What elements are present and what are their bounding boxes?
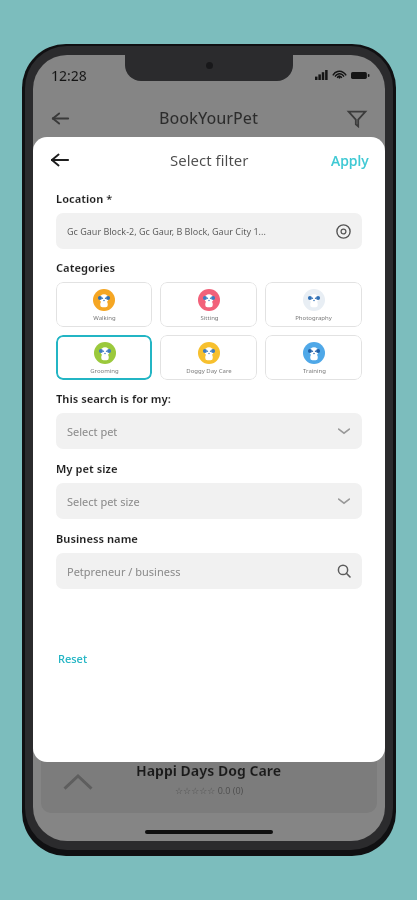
button[interactable]: Apply — [323, 145, 377, 176]
button[interactable]: Doggy Day Care — [160, 335, 257, 380]
staticText: Business name — [56, 531, 138, 546]
staticText: Select pet — [67, 424, 118, 439]
button[interactable]: Gc Gaur Block-2, Gc Gaur, B Block, Gaur … — [56, 213, 362, 249]
staticText: Select pet size — [67, 494, 140, 509]
button[interactable]: Back — [43, 101, 77, 135]
button[interactable]: Select pet — [56, 413, 362, 449]
button[interactable]: Filter — [341, 102, 373, 134]
staticText: ☆☆☆☆☆ 0.0 (0) — [175, 784, 244, 796]
button[interactable]: Sitting — [160, 282, 257, 327]
staticText: Categories — [56, 260, 116, 275]
staticText: BookYourPet — [159, 107, 259, 129]
staticText: Sitting — [200, 314, 219, 322]
button[interactable]: Training — [265, 335, 362, 380]
button[interactable]: Select pet size — [56, 483, 362, 519]
staticText: Petpreneur / business — [67, 564, 181, 579]
staticText: My pet size — [56, 461, 118, 476]
staticText: Reset — [58, 651, 88, 666]
staticText: Gc Gaur Block-2, Gc Gaur, B Block, Gaur … — [67, 225, 266, 237]
staticText: This search is for my: — [56, 391, 171, 406]
button[interactable]: Walking — [56, 282, 152, 327]
button[interactable]: Happi Days Dog Care — [41, 751, 377, 813]
staticText: Select filter — [170, 150, 249, 170]
button[interactable]: Reset — [56, 647, 90, 670]
staticText: Photography — [295, 314, 332, 322]
button[interactable]: Grooming — [56, 335, 152, 380]
staticText: Doggy Day Care — [186, 367, 232, 375]
button[interactable]: Petpreneur / business — [56, 553, 362, 589]
button[interactable]: Close filter — [43, 143, 77, 177]
staticText: Happi Days Dog Care — [136, 761, 282, 780]
staticText: 12:28 — [51, 66, 87, 85]
staticText: Training — [303, 367, 326, 375]
button[interactable]: Photography — [265, 282, 362, 327]
staticText: Apply — [331, 151, 369, 170]
staticText: Walking — [93, 314, 116, 322]
staticText: Location * — [56, 191, 113, 206]
staticText: Grooming — [90, 367, 119, 375]
